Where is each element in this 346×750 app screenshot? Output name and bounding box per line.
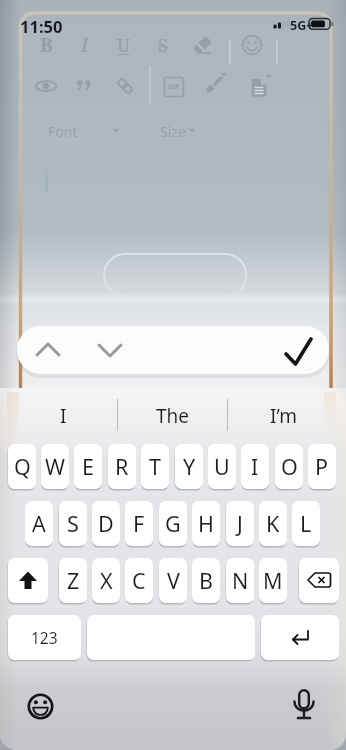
- staticText: T: [149, 452, 161, 481]
- staticText: I’m: [270, 403, 297, 429]
- staticText: P: [315, 452, 329, 481]
- staticText: I: [60, 403, 67, 429]
- button[interactable]: [185, 29, 219, 61]
- staticText: 5G+: [290, 17, 314, 34]
- button[interactable]: A: [25, 501, 53, 546]
- button[interactable]: I: [241, 444, 269, 489]
- button[interactable]: [242, 71, 276, 103]
- staticText: O: [281, 452, 298, 481]
- staticText: B: [40, 32, 53, 58]
- button[interactable]: [197, 70, 231, 102]
- staticText: I: [81, 32, 89, 58]
- button[interactable]: J: [226, 501, 254, 546]
- button[interactable]: [108, 70, 142, 102]
- staticText: 11:50: [20, 15, 63, 37]
- staticText: 123: [31, 627, 58, 648]
- button[interactable]: S: [146, 29, 180, 61]
- button[interactable]: [21, 687, 60, 726]
- staticText: W: [45, 452, 65, 481]
- button[interactable]: [288, 684, 319, 725]
- button[interactable]: Size: [156, 118, 216, 144]
- button[interactable]: [67, 70, 101, 102]
- button[interactable]: [87, 615, 255, 660]
- staticText: E: [82, 452, 94, 481]
- button[interactable]: R: [108, 444, 136, 489]
- button[interactable]: G: [159, 501, 187, 546]
- staticText: D: [98, 509, 114, 538]
- button[interactable]: [271, 326, 325, 374]
- staticText: G: [165, 509, 181, 538]
- button[interactable]: O: [275, 444, 303, 489]
- button[interactable]: F: [125, 501, 153, 546]
- staticText: GIF: [168, 82, 180, 92]
- staticText: S: [67, 509, 79, 538]
- staticText: S: [158, 33, 168, 58]
- button[interactable]: [299, 558, 339, 603]
- button[interactable]: B: [192, 558, 220, 603]
- staticText: X: [100, 566, 113, 595]
- staticText: F: [133, 509, 145, 538]
- staticText: Size: [160, 122, 186, 141]
- staticText: Y: [183, 452, 196, 481]
- staticText: Z: [67, 566, 80, 595]
- staticText: The: [156, 403, 190, 429]
- button[interactable]: Z: [59, 558, 87, 603]
- staticText: Font: [48, 122, 78, 141]
- button[interactable]: S: [59, 501, 87, 546]
- button[interactable]: X: [92, 558, 120, 603]
- button[interactable]: I: [68, 29, 102, 61]
- staticText: Q: [14, 452, 31, 481]
- button[interactable]: U: [208, 444, 236, 489]
- button[interactable]: D: [92, 501, 120, 546]
- staticText: J: [237, 509, 243, 538]
- button[interactable]: B: [29, 29, 63, 61]
- button[interactable]: U: [107, 29, 141, 61]
- button[interactable]: W: [41, 444, 69, 489]
- button[interactable]: L: [292, 501, 320, 546]
- staticText: I: [251, 452, 259, 481]
- button[interactable]: Q: [8, 444, 36, 489]
- button[interactable]: 123: [8, 615, 81, 660]
- button[interactable]: [235, 29, 269, 61]
- staticText: A: [32, 509, 46, 538]
- staticText: U: [214, 452, 230, 481]
- button[interactable]: The: [120, 395, 225, 437]
- staticText: U: [117, 33, 131, 58]
- button[interactable]: E: [74, 444, 102, 489]
- button[interactable]: [8, 558, 48, 603]
- staticText: M: [263, 566, 283, 595]
- button[interactable]: C: [125, 558, 153, 603]
- staticText: N: [232, 566, 249, 595]
- staticText: L: [300, 509, 312, 538]
- button[interactable]: K: [259, 501, 287, 546]
- staticText: H: [198, 509, 214, 538]
- button[interactable]: I’m: [230, 395, 336, 437]
- button[interactable]: N: [226, 558, 254, 603]
- button[interactable]: GIF: [157, 71, 191, 103]
- button[interactable]: T: [141, 444, 169, 489]
- staticText: V: [167, 566, 180, 595]
- button[interactable]: [261, 615, 339, 660]
- button[interactable]: H: [192, 501, 220, 546]
- button[interactable]: [27, 326, 69, 374]
- button[interactable]: [29, 70, 63, 102]
- staticText: C: [132, 566, 146, 595]
- button[interactable]: M: [259, 558, 287, 603]
- button[interactable]: V: [159, 558, 187, 603]
- staticText: R: [115, 452, 129, 481]
- staticText: B: [199, 566, 213, 595]
- button[interactable]: P: [308, 444, 336, 489]
- staticText: K: [266, 509, 280, 538]
- button[interactable]: [89, 326, 131, 374]
- button[interactable]: I: [10, 395, 117, 437]
- button[interactable]: Y: [175, 444, 203, 489]
- button[interactable]: Font: [44, 118, 124, 144]
